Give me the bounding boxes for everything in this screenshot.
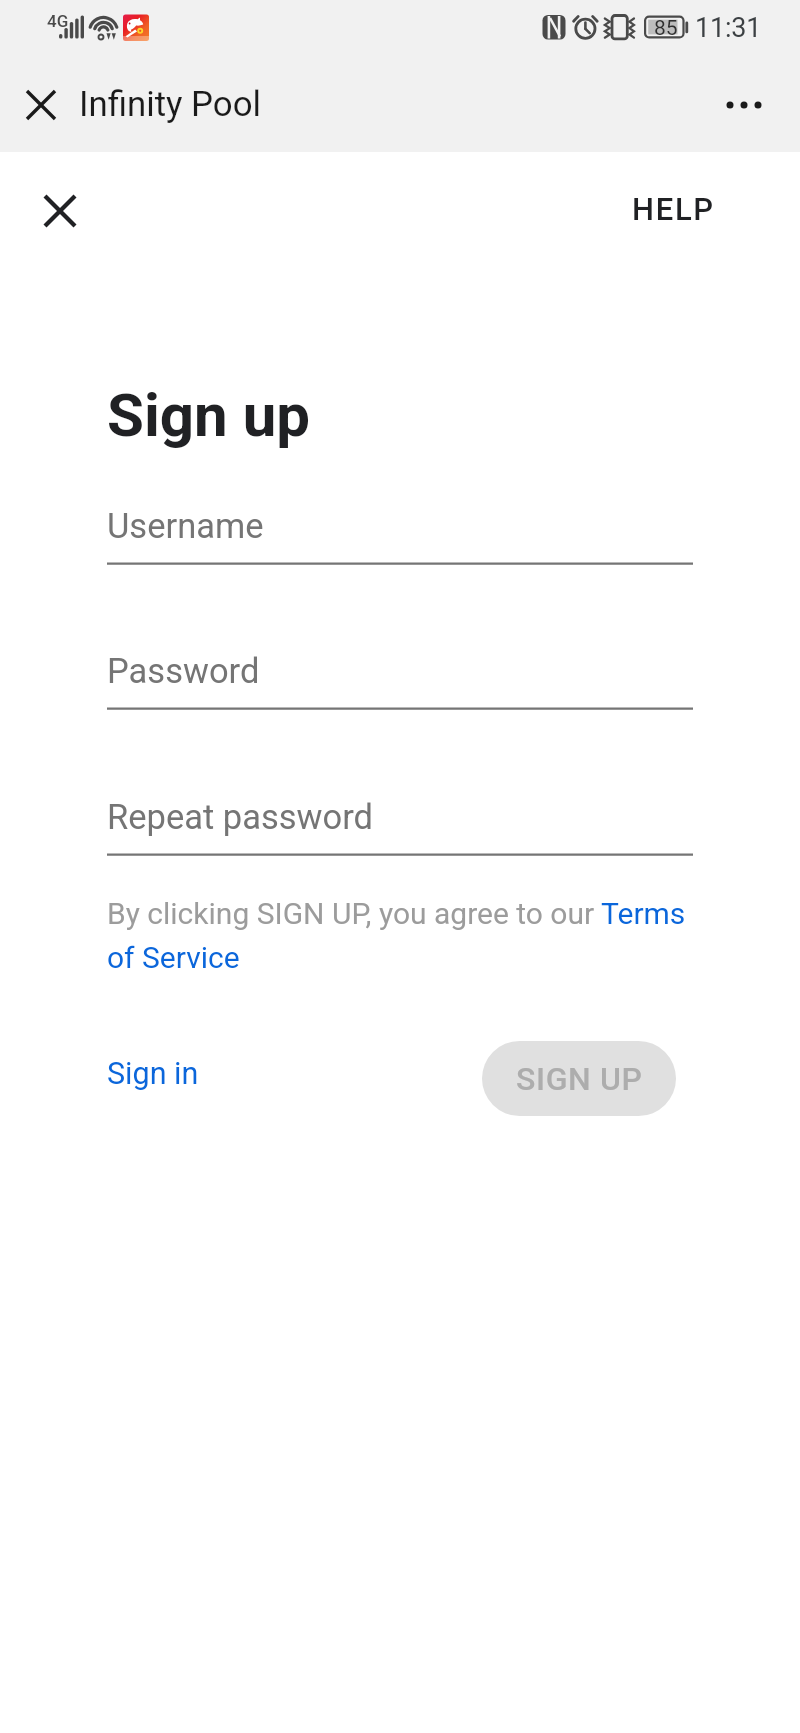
button[interactable]: Close (17, 81, 65, 129)
button[interactable]: HELP (632, 191, 715, 227)
staticText: SIGN UP (516, 1060, 643, 1098)
staticText: Password (107, 651, 260, 691)
button[interactable]: SIGN UP (482, 1041, 676, 1116)
staticText: 11:31 (695, 12, 762, 44)
staticText: 4G (47, 11, 69, 31)
staticText: Infinity Pool (79, 84, 262, 125)
staticText: Sign in (107, 1056, 199, 1092)
staticText: Username (107, 506, 264, 546)
staticText: Repeat password (107, 797, 374, 837)
staticText: 85 (654, 16, 678, 41)
staticText: HELP (632, 191, 715, 227)
button[interactable]: Sign in (91, 1041, 208, 1116)
staticText: By clicking SIGN UP, you agree to our Te… (107, 896, 707, 975)
button[interactable]: More options (715, 76, 773, 134)
button[interactable]: Close (30, 181, 90, 241)
button[interactable]: By clicking SIGN UP, you agree to our Te… (107, 896, 707, 975)
staticText: Sign up (107, 380, 310, 450)
